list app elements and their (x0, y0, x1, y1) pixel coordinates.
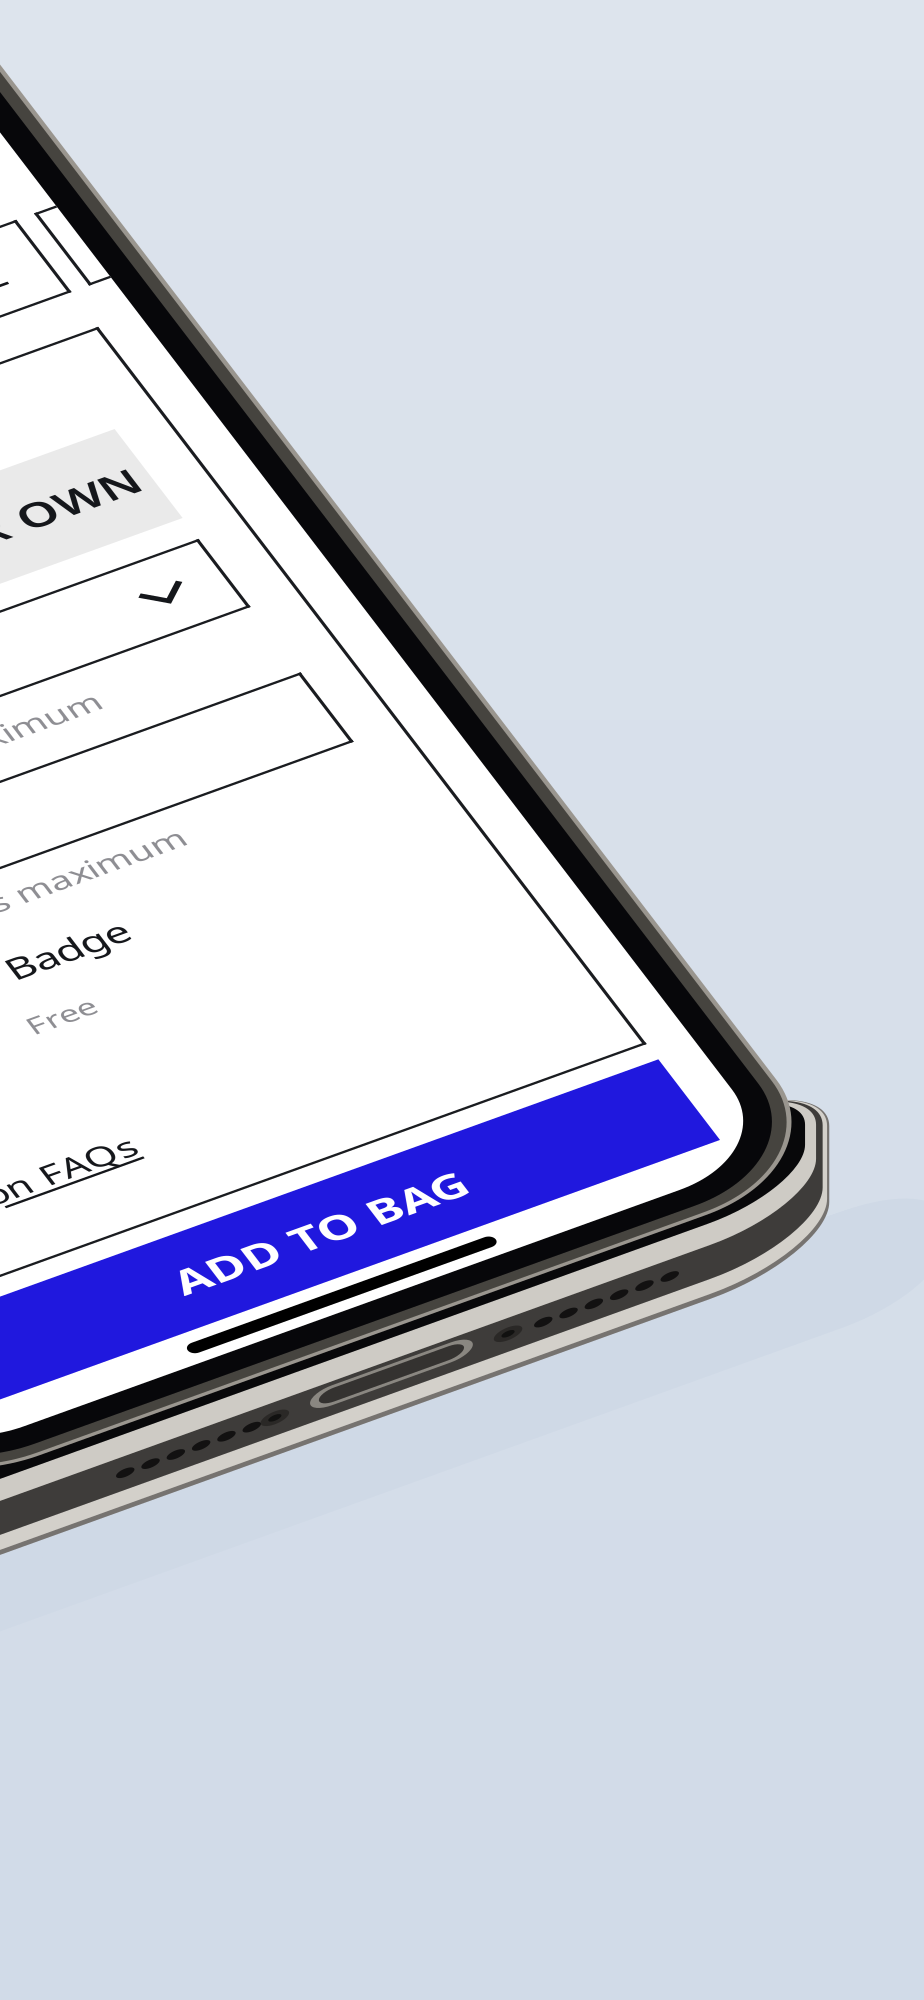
staticText: 12 characters maximum (82, 546, 264, 568)
staticText: Add a Name & Number Badge (0, 586, 219, 610)
staticText: ADD TO BAG (138, 795, 269, 823)
staticText: Free (156, 624, 186, 644)
staticText: Personalisation FAQs (0, 709, 162, 732)
staticText: PERSONALISE YOUR OWN (77, 332, 345, 360)
staticText: 15 characters maximum (89, 452, 271, 474)
